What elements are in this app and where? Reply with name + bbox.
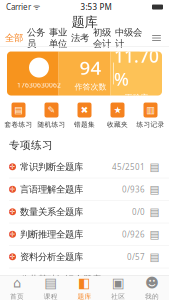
staticText: 0/936 [122,184,145,195]
staticText: 题库 [77,292,91,300]
staticText: 法考 [71,32,89,44]
staticText: ★ [113,105,121,115]
staticText: ✛ [9,275,15,283]
button[interactable]: 公务员 [27,26,45,49]
staticText: ▤ [149,251,159,263]
button[interactable]: 全部 [5,32,23,44]
staticText: 事业单位 [49,26,67,49]
staticText: 中级会计 [115,26,142,49]
staticText: 课程 [44,292,58,300]
button[interactable]: ★ [101,98,134,133]
staticText: 社区 [111,292,125,300]
staticText: ✛ [9,230,15,238]
button[interactable]: ✛ [0,268,169,291]
staticText: 作答次数 [75,82,107,92]
staticText: 我的 [145,292,159,300]
button[interactable]: ◧ [68,272,101,300]
button[interactable]: 展开分类 [149,32,164,44]
button[interactable]: ▤ [2,98,35,133]
staticText: ✛ [9,185,15,193]
staticText: 随机练习 [37,120,65,129]
staticText: ◧ [78,275,91,290]
staticText: ▤ [149,161,159,173]
staticText: ✛ [9,208,15,216]
staticText: ✛ [9,163,15,171]
button[interactable]: ✛ [0,156,169,178]
button[interactable]: ✎ [35,98,68,133]
staticText: 0/959 [122,274,145,285]
button[interactable]: ✛ [0,178,169,201]
staticText: ☻ [145,275,159,290]
staticText: ✛ [9,253,15,261]
staticText: ✎ [47,105,55,115]
staticText: 45/2501 [112,161,145,172]
staticText: 错题集 [74,120,95,129]
staticText: 0/0 [132,206,145,217]
button[interactable]: ✛ [0,223,169,246]
staticText: 专项练习 [9,139,53,152]
staticText: 收藏夹 [107,120,128,129]
staticText: Carrier [6,2,31,12]
staticText: 3:53 PM [80,2,111,12]
staticText: 0/926 [122,229,145,240]
button[interactable]: ✛ [0,246,169,268]
staticText: ☻ [30,58,47,77]
button[interactable]: ▤ [34,272,68,300]
staticText: 94 [80,55,102,80]
staticText: 常识判断全题库 [20,161,83,173]
staticText: 判断推理全题库 [20,229,83,240]
staticText: ▤ [14,105,23,115]
staticText: ᯤ [31,2,40,12]
staticText: ▣ [112,275,125,290]
button[interactable]: ✛ [0,201,169,223]
staticText: ✖ [80,105,88,115]
button[interactable]: ▥ [134,98,167,133]
staticText: ▤ [149,183,159,195]
staticText: 公务员 [27,26,45,49]
staticText: 首页 [10,292,24,300]
staticText: 练习记录 [136,120,164,129]
button[interactable]: 中级会计 [115,26,142,49]
staticText: 初级会计 [93,26,111,49]
staticText: ▤ [149,273,159,285]
staticText: ⌂ [13,275,21,290]
button[interactable]: ▣ [101,272,135,300]
staticText: 11.70% [114,45,159,91]
button[interactable]: 事业单位 [49,26,67,49]
button[interactable]: ☻ [135,272,169,300]
staticText: 数量关系全题库 [20,206,83,218]
staticText: 言语理解全题库 [20,184,83,195]
staticText: 套卷练习 [4,120,32,129]
staticText: ▤ [149,228,159,240]
button[interactable]: ⌂ [0,272,34,300]
staticText: 资料分析全题库 [20,251,83,263]
button[interactable]: 法考 [71,32,89,44]
staticText: 全部 [5,32,23,44]
staticText: ▥ [146,105,155,115]
button[interactable]: 初级会计 [93,26,111,49]
staticText: 0/57 [127,251,145,262]
button[interactable]: ✖ [68,98,101,133]
staticText: 17630630062 [17,81,61,89]
staticText: 公共基础知识全题库 [20,274,101,285]
staticText: ▤ [149,206,159,218]
staticText: ▤ [44,275,57,290]
staticText: 题库 [71,14,97,30]
staticText: 正确率 [124,93,148,102]
